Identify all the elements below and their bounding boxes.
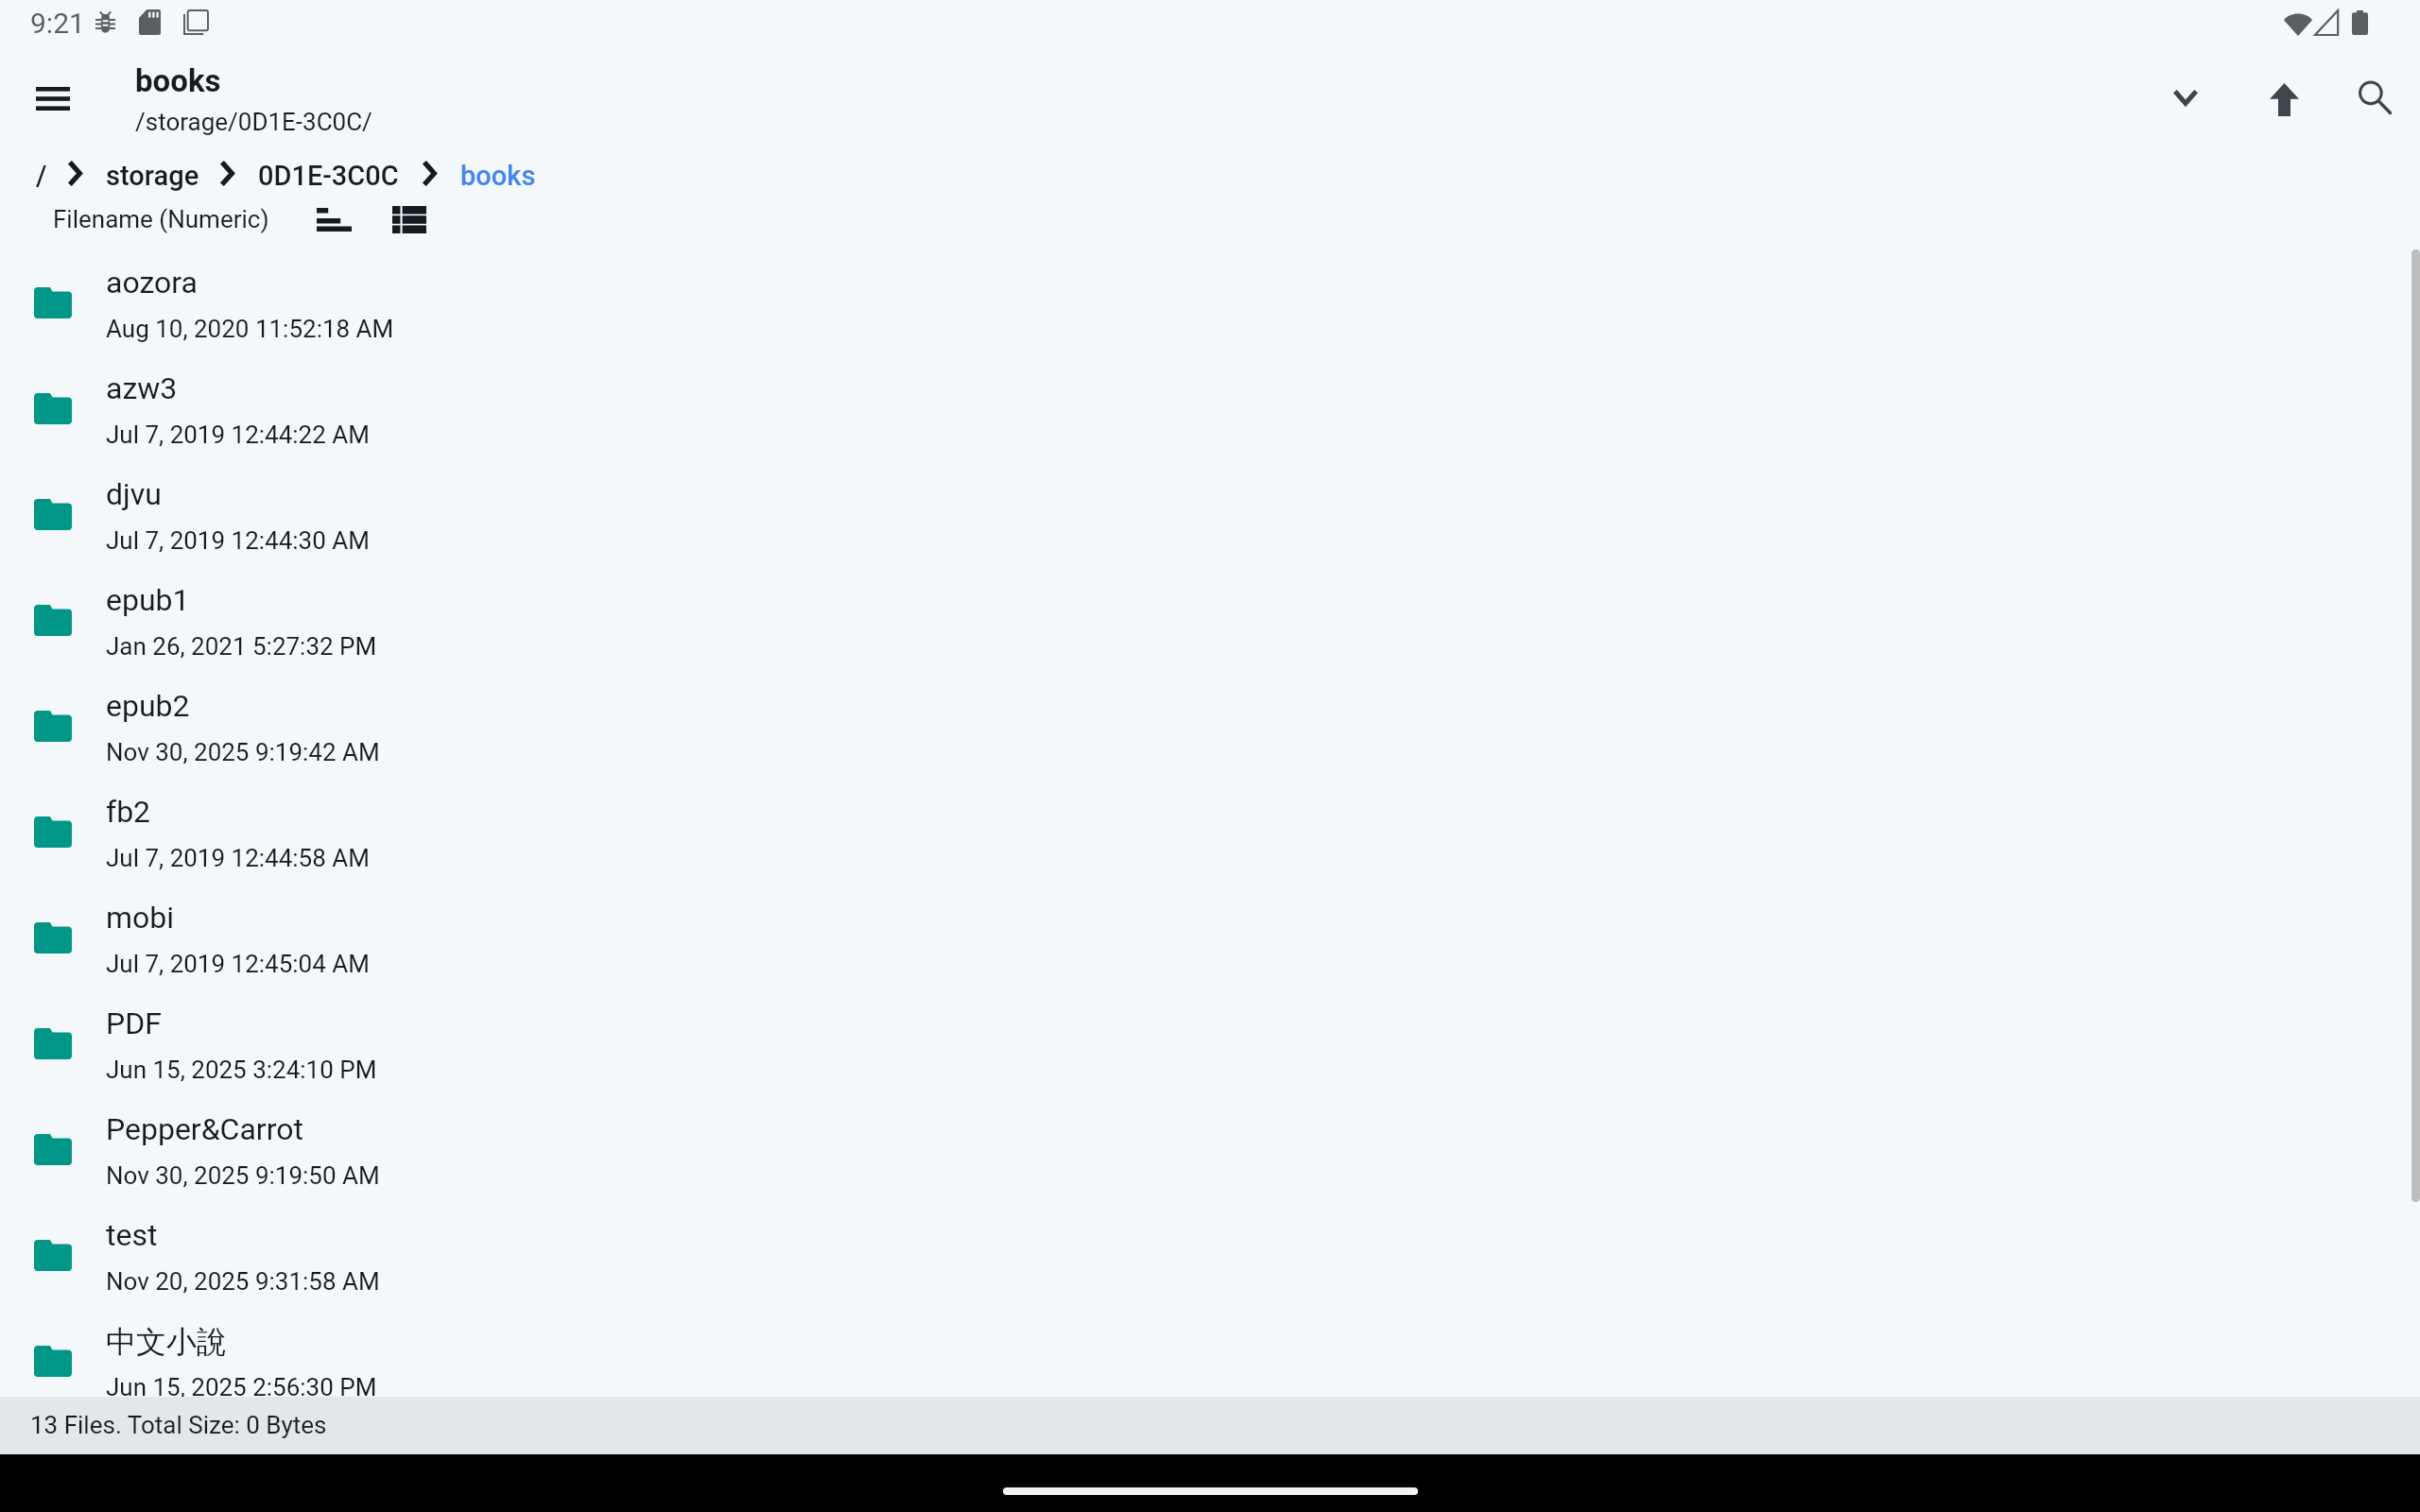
staticText: Pepper&Carrot — [106, 1111, 303, 1147]
staticText: Nov 30, 2025 9:19:42 AM — [106, 738, 380, 766]
button[interactable]: PDF — [0, 996, 2420, 1102]
staticText: Filename (Numeric) — [53, 205, 269, 233]
staticText: epub1 — [106, 582, 190, 618]
button[interactable]: Pepper&Carrot — [0, 1102, 2420, 1208]
staticText: Jul 7, 2019 12:44:58 AM — [106, 844, 370, 872]
staticText: Jan 26, 2021 5:27:32 PM — [106, 632, 377, 661]
staticText: storage — [106, 160, 199, 192]
staticText: books — [135, 62, 221, 99]
button[interactable]: 中文小說 — [0, 1314, 2420, 1419]
button[interactable]: Upload — [2247, 62, 2321, 136]
staticText: books — [460, 160, 536, 192]
button[interactable]: / — [28, 160, 55, 192]
button[interactable]: Sort order — [305, 196, 362, 243]
staticText: 中文小說 — [106, 1323, 227, 1361]
staticText: fb2 — [106, 794, 151, 830]
staticText: / — [36, 160, 47, 192]
staticText: 0D1E-3C0C — [258, 160, 399, 192]
staticText: Jun 15, 2025 3:24:10 PM — [106, 1056, 377, 1084]
staticText: epub2 — [106, 688, 190, 724]
button[interactable]: View mode — [381, 196, 438, 243]
button[interactable]: mobi — [0, 890, 2420, 996]
button[interactable]: epub1 — [0, 573, 2420, 679]
button[interactable]: djvu — [0, 467, 2420, 573]
staticText: PDF — [106, 1005, 162, 1041]
button[interactable]: test — [0, 1208, 2420, 1314]
button[interactable]: azw3 — [0, 361, 2420, 467]
staticText: azw3 — [106, 370, 178, 406]
staticText: Nov 30, 2025 9:19:50 AM — [106, 1161, 380, 1190]
staticText: test — [106, 1217, 158, 1253]
staticText: Aug 10, 2020 11:52:18 AM — [106, 315, 394, 343]
button[interactable]: Menu — [18, 63, 88, 133]
button[interactable]: Search — [2338, 60, 2411, 134]
staticText: Nov 20, 2025 9:31:58 AM — [106, 1267, 380, 1296]
staticText: djvu — [106, 476, 162, 512]
staticText: Jul 7, 2019 12:44:30 AM — [106, 526, 370, 555]
staticText: /storage/0D1E-3C0C/ — [135, 108, 372, 136]
staticText: aozora — [106, 265, 198, 301]
button[interactable]: epub2 — [0, 679, 2420, 784]
button[interactable]: Expand — [2149, 61, 2222, 135]
button[interactable]: fb2 — [0, 784, 2420, 890]
staticText: 13 Files. Total Size: 0 Bytes — [30, 1411, 327, 1439]
button[interactable]: storage — [98, 160, 207, 192]
button[interactable]: aozora — [0, 255, 2420, 361]
button[interactable]: Filename (Numeric) — [45, 201, 277, 237]
staticText: Jul 7, 2019 12:45:04 AM — [106, 950, 370, 978]
staticText: Jun 15, 2025 2:56:30 PM — [106, 1373, 377, 1401]
staticText: mobi — [106, 900, 175, 936]
button[interactable]: 0D1E-3C0C — [251, 160, 406, 192]
staticText: 9:21 — [30, 7, 85, 40]
button[interactable]: books — [453, 160, 544, 192]
staticText: Jul 7, 2019 12:44:22 AM — [106, 421, 370, 449]
